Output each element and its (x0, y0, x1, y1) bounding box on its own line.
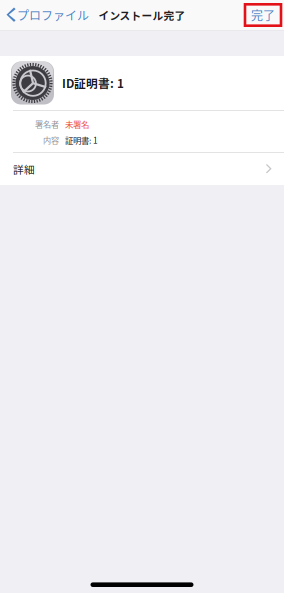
button[interactable]: 詳細 (0, 153, 284, 185)
staticText: ID証明書: 1 (62, 74, 124, 91)
button[interactable]: プロファイル (0, 0, 89, 30)
staticText: 完了 (251, 6, 275, 24)
staticText: インストール完了 (98, 7, 185, 23)
staticText: 証明書: 1 (65, 134, 98, 146)
staticText: 未署名 (65, 118, 89, 130)
staticText: 内容 (43, 134, 59, 146)
staticText: プロファイル (17, 6, 89, 24)
staticText: 詳細 (13, 161, 35, 177)
staticText: 署名者 (35, 118, 59, 130)
button[interactable]: 完了 (245, 4, 284, 26)
